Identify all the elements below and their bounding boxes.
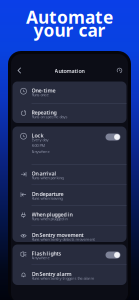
staticText: Runs when parking [31,175,63,180]
staticText: Runs on specific days [31,114,67,119]
staticText: Lock [31,132,43,139]
staticText: Runs once [31,92,48,97]
button[interactable]: On arrival [12,164,126,184]
staticText: On departure [31,190,63,197]
staticText: Every day [31,137,48,142]
staticText: your car [33,18,105,41]
staticText: On arrival [31,170,56,177]
button[interactable]: One-time [12,81,126,103]
button[interactable]: History [114,65,125,76]
button[interactable]: Flash lights [12,244,126,264]
staticText: Repeating [31,109,56,116]
staticText: Runs when leaving [31,196,62,201]
staticText: 8:00 PM [31,143,45,148]
staticText: On Sentry alarm [31,270,71,277]
staticText: Flash lights [31,250,61,257]
staticText: Anywhere [31,255,49,260]
staticText: Anywhere [31,149,49,154]
button[interactable]: Repeating [12,103,126,123]
button[interactable]: Lock [12,126,126,164]
button[interactable]: On Sentry movement [12,226,126,242]
staticText: Runs when Sentry triggers the alarm [31,276,94,281]
button[interactable]: On Sentry alarm [12,265,126,285]
staticText: When plugged in [31,211,72,218]
staticText: Automate [26,5,113,28]
staticText: One-time [31,87,55,94]
staticText: Runs when plugged in [31,216,67,221]
staticText: On Sentry movement [31,231,83,238]
staticText: Automation [54,67,84,75]
button[interactable]: When plugged in [12,205,126,225]
button[interactable]: On departure [12,185,126,205]
button[interactable]: Back [14,65,25,76]
staticText: Runs when Sentry detects movement [31,237,94,242]
